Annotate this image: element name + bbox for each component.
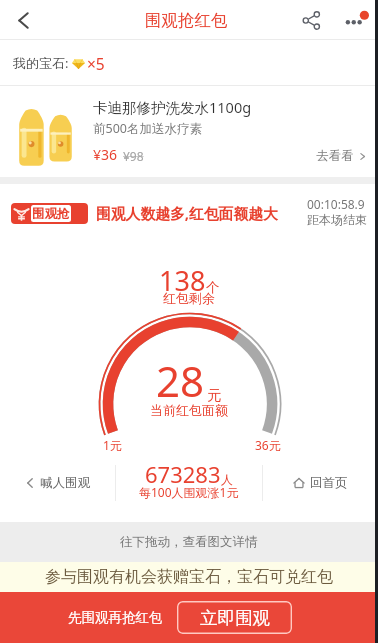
staticText: 围观抢红包 [145,10,228,31]
staticText: 每100人围观涨1元 [139,484,239,500]
staticText: 28 [156,352,205,409]
staticText: 立即围观 [200,607,270,629]
button[interactable]: 先围观再抢红包 [30,592,200,643]
button[interactable]: Share [291,0,331,40]
button[interactable]: 喊人围观 [0,460,115,506]
staticText: 元 [207,386,222,404]
staticText: 当前红包面额 [150,402,228,418]
staticText: 先围观再抢红包 [68,609,163,626]
staticText: 1元 [103,437,122,453]
staticText: 围观抢 [32,206,70,222]
staticText: 卡迪那修护洗发水1100g [93,97,252,117]
staticText: 36元 [255,437,281,453]
staticText: 往下拖动，查看图文详情 [120,534,258,550]
staticText: 围观人数越多,红包面额越大 [96,203,278,223]
staticText: 回首页 [310,475,348,491]
button[interactable]: 回首页 [263,460,378,506]
staticText: ×5 [87,53,105,74]
button[interactable]: Back [2,0,44,40]
staticText: 参与围观有机会获赠宝石，宝石可兑红包 [45,567,333,587]
staticText: 我的宝石: [13,54,69,72]
staticText: 个 [206,279,220,296]
staticText: 前500名加送水疗素 [93,120,202,137]
staticText: 去看看 [316,148,354,164]
staticText: ¥98 [123,148,144,164]
staticText: 红包剩余 [163,290,215,306]
staticText: 673283 [145,459,221,489]
button[interactable]: More options [336,0,376,40]
button[interactable]: 卡迪那修护洗发水1100g [0,86,378,177]
staticText: 00:10:58.9 [307,196,365,212]
staticText: 距本场结束 [307,212,367,227]
staticText: 人 [221,472,233,487]
staticText: 138 [159,262,206,299]
staticText: ¥36 [93,145,118,164]
staticText: 喊人围观 [40,475,90,491]
button[interactable]: 立即围观 [177,601,292,634]
